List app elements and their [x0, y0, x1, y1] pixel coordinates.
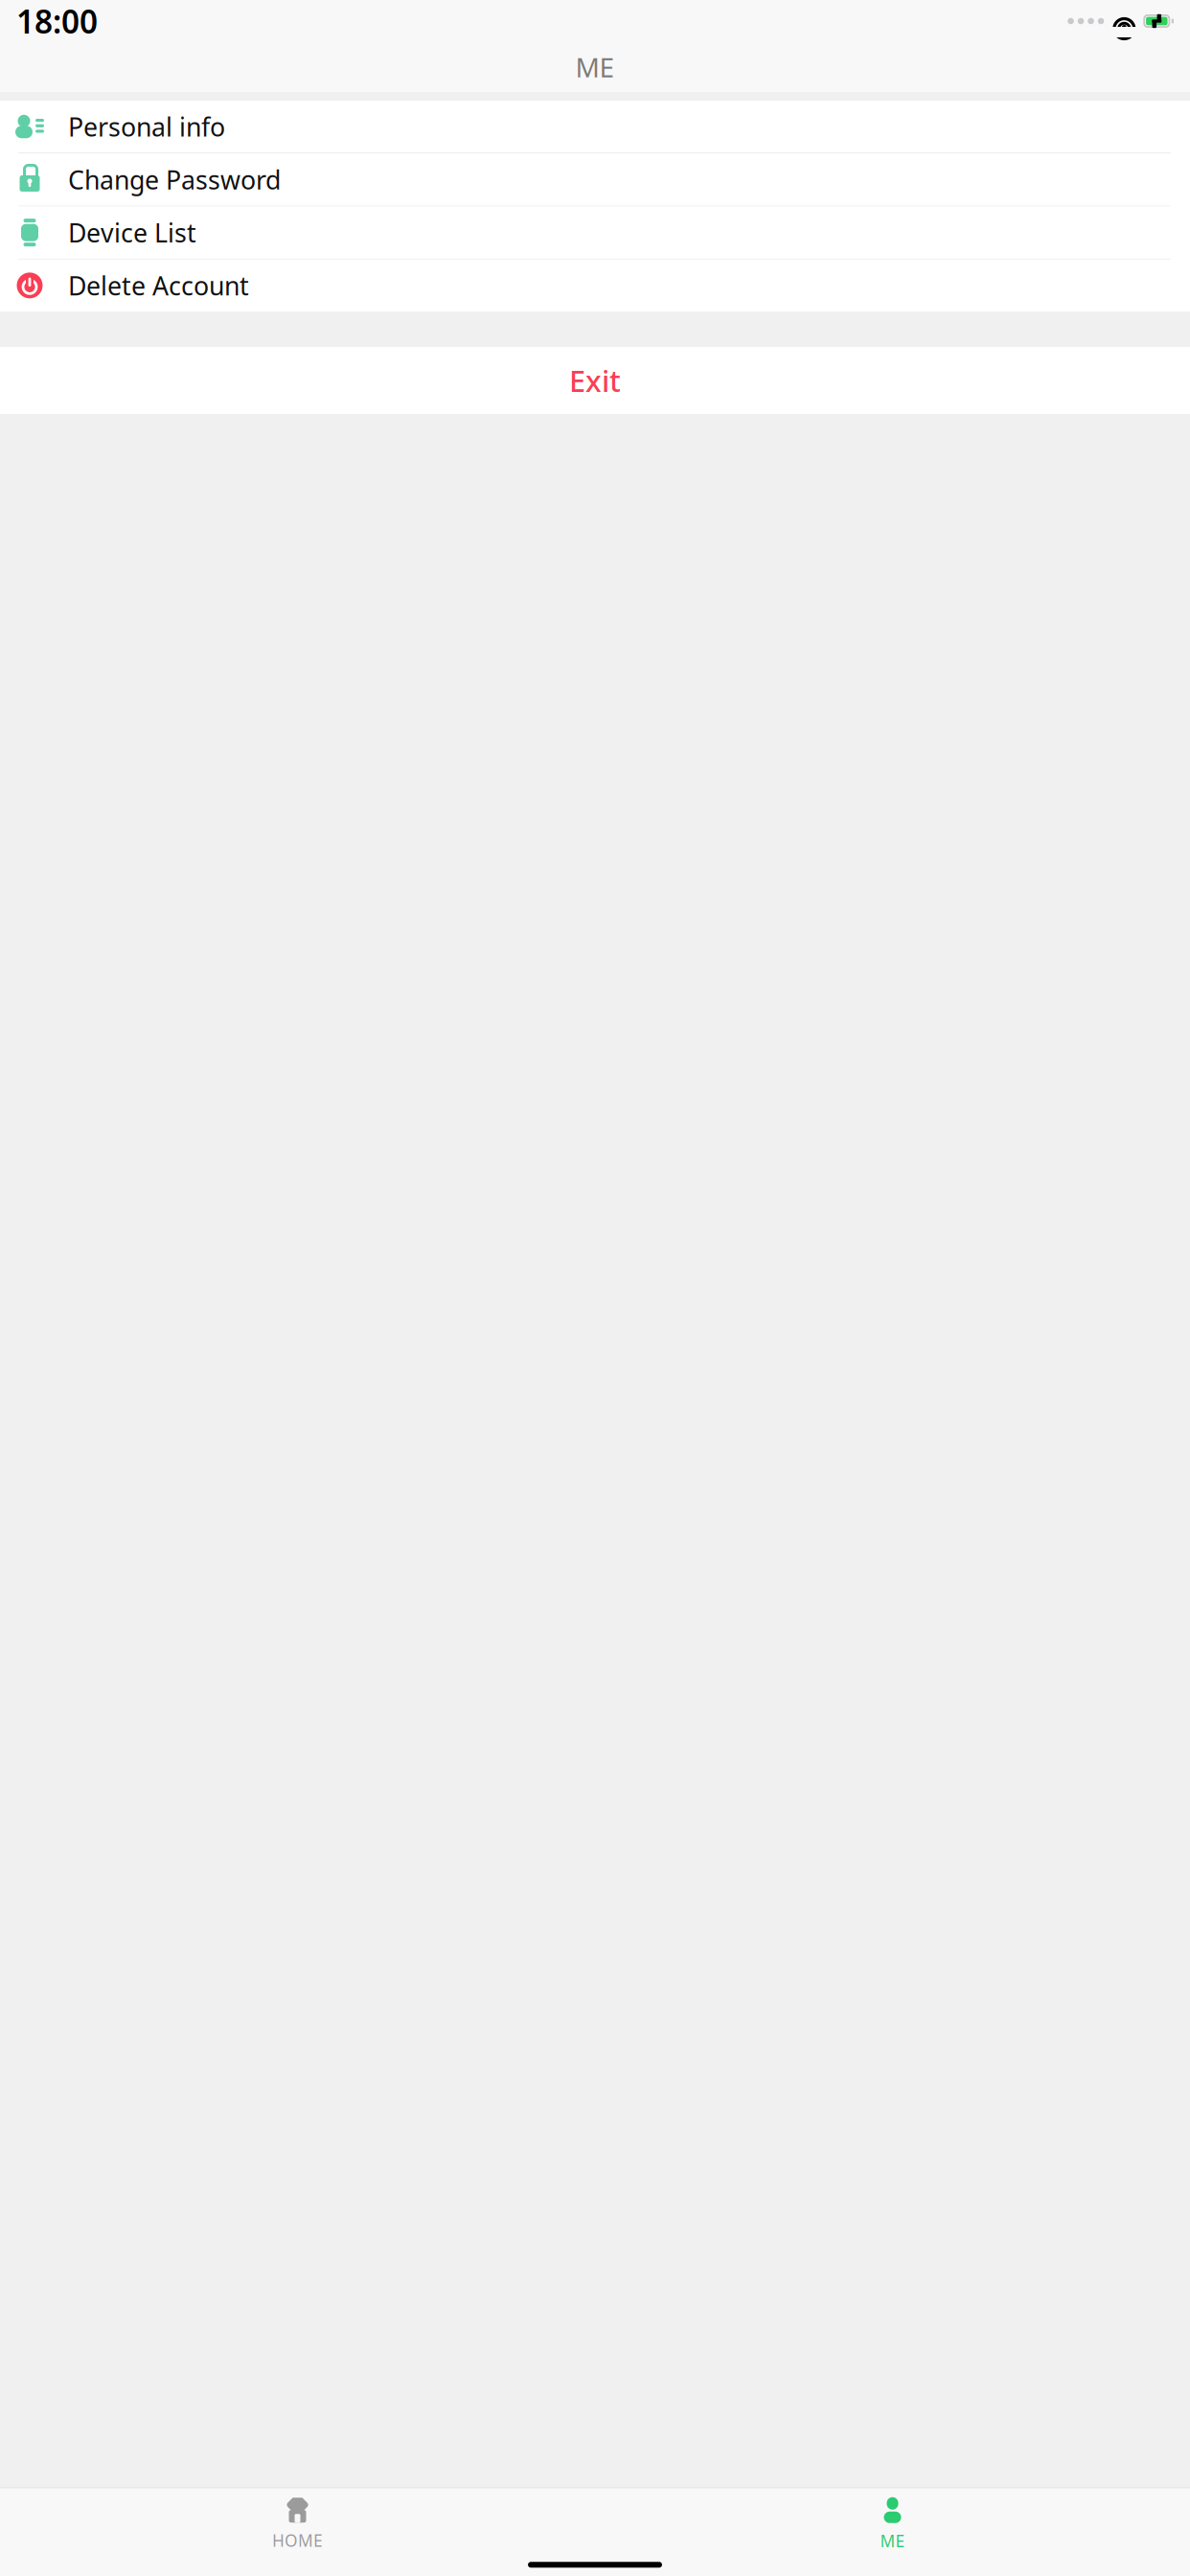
staticText: ME [575, 49, 615, 85]
staticText: Exit [569, 361, 621, 400]
staticText: 18:00 [16, 0, 98, 42]
staticText: Personal info [68, 110, 225, 144]
button[interactable]: HOME [0, 2495, 595, 2554]
button[interactable]: Exit [0, 347, 1190, 414]
staticText: Device List [68, 216, 196, 249]
staticText: ME [880, 2530, 905, 2552]
staticText: HOME [272, 2529, 323, 2551]
button[interactable]: Device List [0, 206, 1190, 259]
button[interactable]: Personal info [0, 101, 1190, 153]
button[interactable]: ME [595, 2495, 1190, 2554]
button[interactable]: Change Password [0, 154, 1190, 206]
staticText: Delete Account [68, 268, 249, 302]
staticText: Change Password [68, 163, 281, 197]
button[interactable]: Delete Account [0, 259, 1190, 312]
